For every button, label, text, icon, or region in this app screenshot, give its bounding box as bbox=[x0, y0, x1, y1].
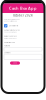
staticText: and track it in this app bbox=[4, 20, 17, 22]
staticText: Number of extra cards bbox=[4, 29, 20, 31]
staticText: Contact person bbox=[4, 42, 15, 43]
staticText: Agree to terms bbox=[9, 25, 19, 27]
staticText: Delivered by post bbox=[4, 38, 16, 39]
staticText: Send bbox=[13, 62, 17, 64]
staticText: Choose how many bbox=[4, 31, 17, 33]
staticText: Full name bbox=[4, 45, 10, 47]
staticText: Delivery address bbox=[4, 35, 17, 37]
staticText: October 2024 bbox=[13, 14, 33, 17]
button[interactable]: Send bbox=[10, 61, 20, 65]
staticText: Cash Box App bbox=[9, 6, 37, 11]
staticText: Enter the data in the entry bbox=[4, 18, 20, 20]
staticText: Comment bbox=[4, 52, 10, 54]
button[interactable]: Agree to terms bbox=[4, 24, 42, 27]
